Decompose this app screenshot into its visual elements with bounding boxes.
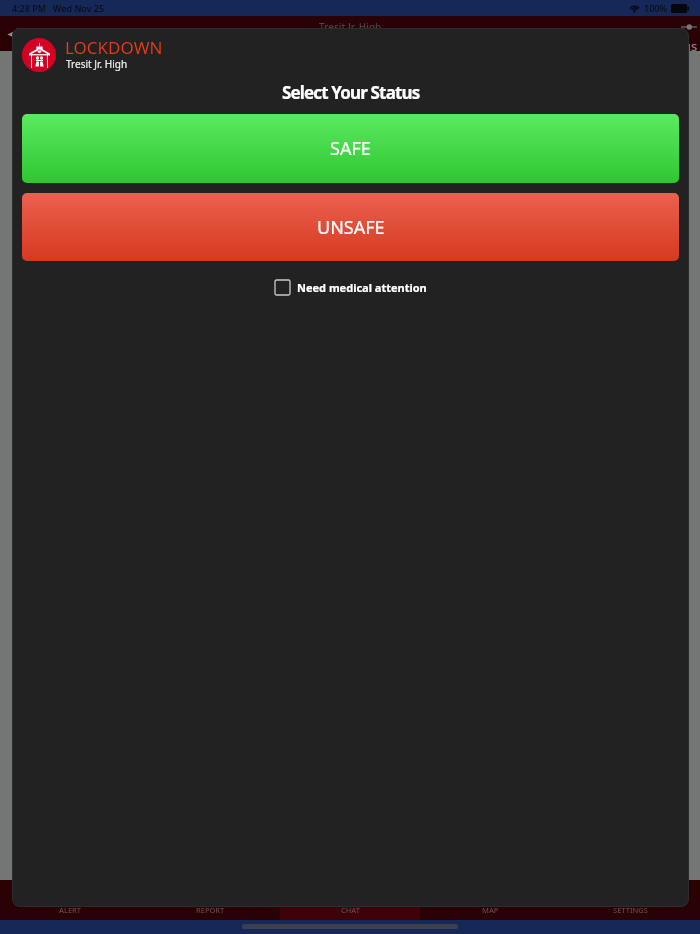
staticText: Tresit Jr. High <box>319 20 382 34</box>
staticText: MAP <box>482 905 499 915</box>
button[interactable]: ALERT <box>0 880 140 920</box>
button[interactable]: UNSAFE <box>22 193 679 261</box>
button[interactable]: REPORT <box>140 880 280 920</box>
button[interactable]: SETTINGS <box>560 880 700 920</box>
staticText: Select Your Status <box>282 81 420 104</box>
staticText: CHAT <box>341 905 360 915</box>
staticText: SETTINGS <box>613 905 648 915</box>
staticText: SAFE <box>330 136 371 161</box>
staticText: Tresit Jr. High <box>66 57 128 71</box>
button[interactable]: Filter <box>679 17 699 37</box>
button[interactable]: Need medical attention <box>273 280 429 295</box>
button[interactable]: SAFE <box>22 114 679 183</box>
staticText: Wed Nov 25 <box>53 2 105 14</box>
staticText: UNSAFE <box>317 215 385 240</box>
staticText: Select Your Status <box>586 37 698 55</box>
button[interactable]: CHAT <box>280 880 420 920</box>
button[interactable]: Back <box>7 31 14 38</box>
staticText: 4:28 PM <box>12 2 46 14</box>
staticText: 100% <box>644 2 668 14</box>
button[interactable]: MAP <box>420 880 560 920</box>
staticText: Need medical attention <box>297 280 427 295</box>
staticText: ALERT <box>59 905 82 915</box>
staticText: LOCKDOWN <box>65 36 163 59</box>
staticText: REPORT <box>196 905 225 915</box>
